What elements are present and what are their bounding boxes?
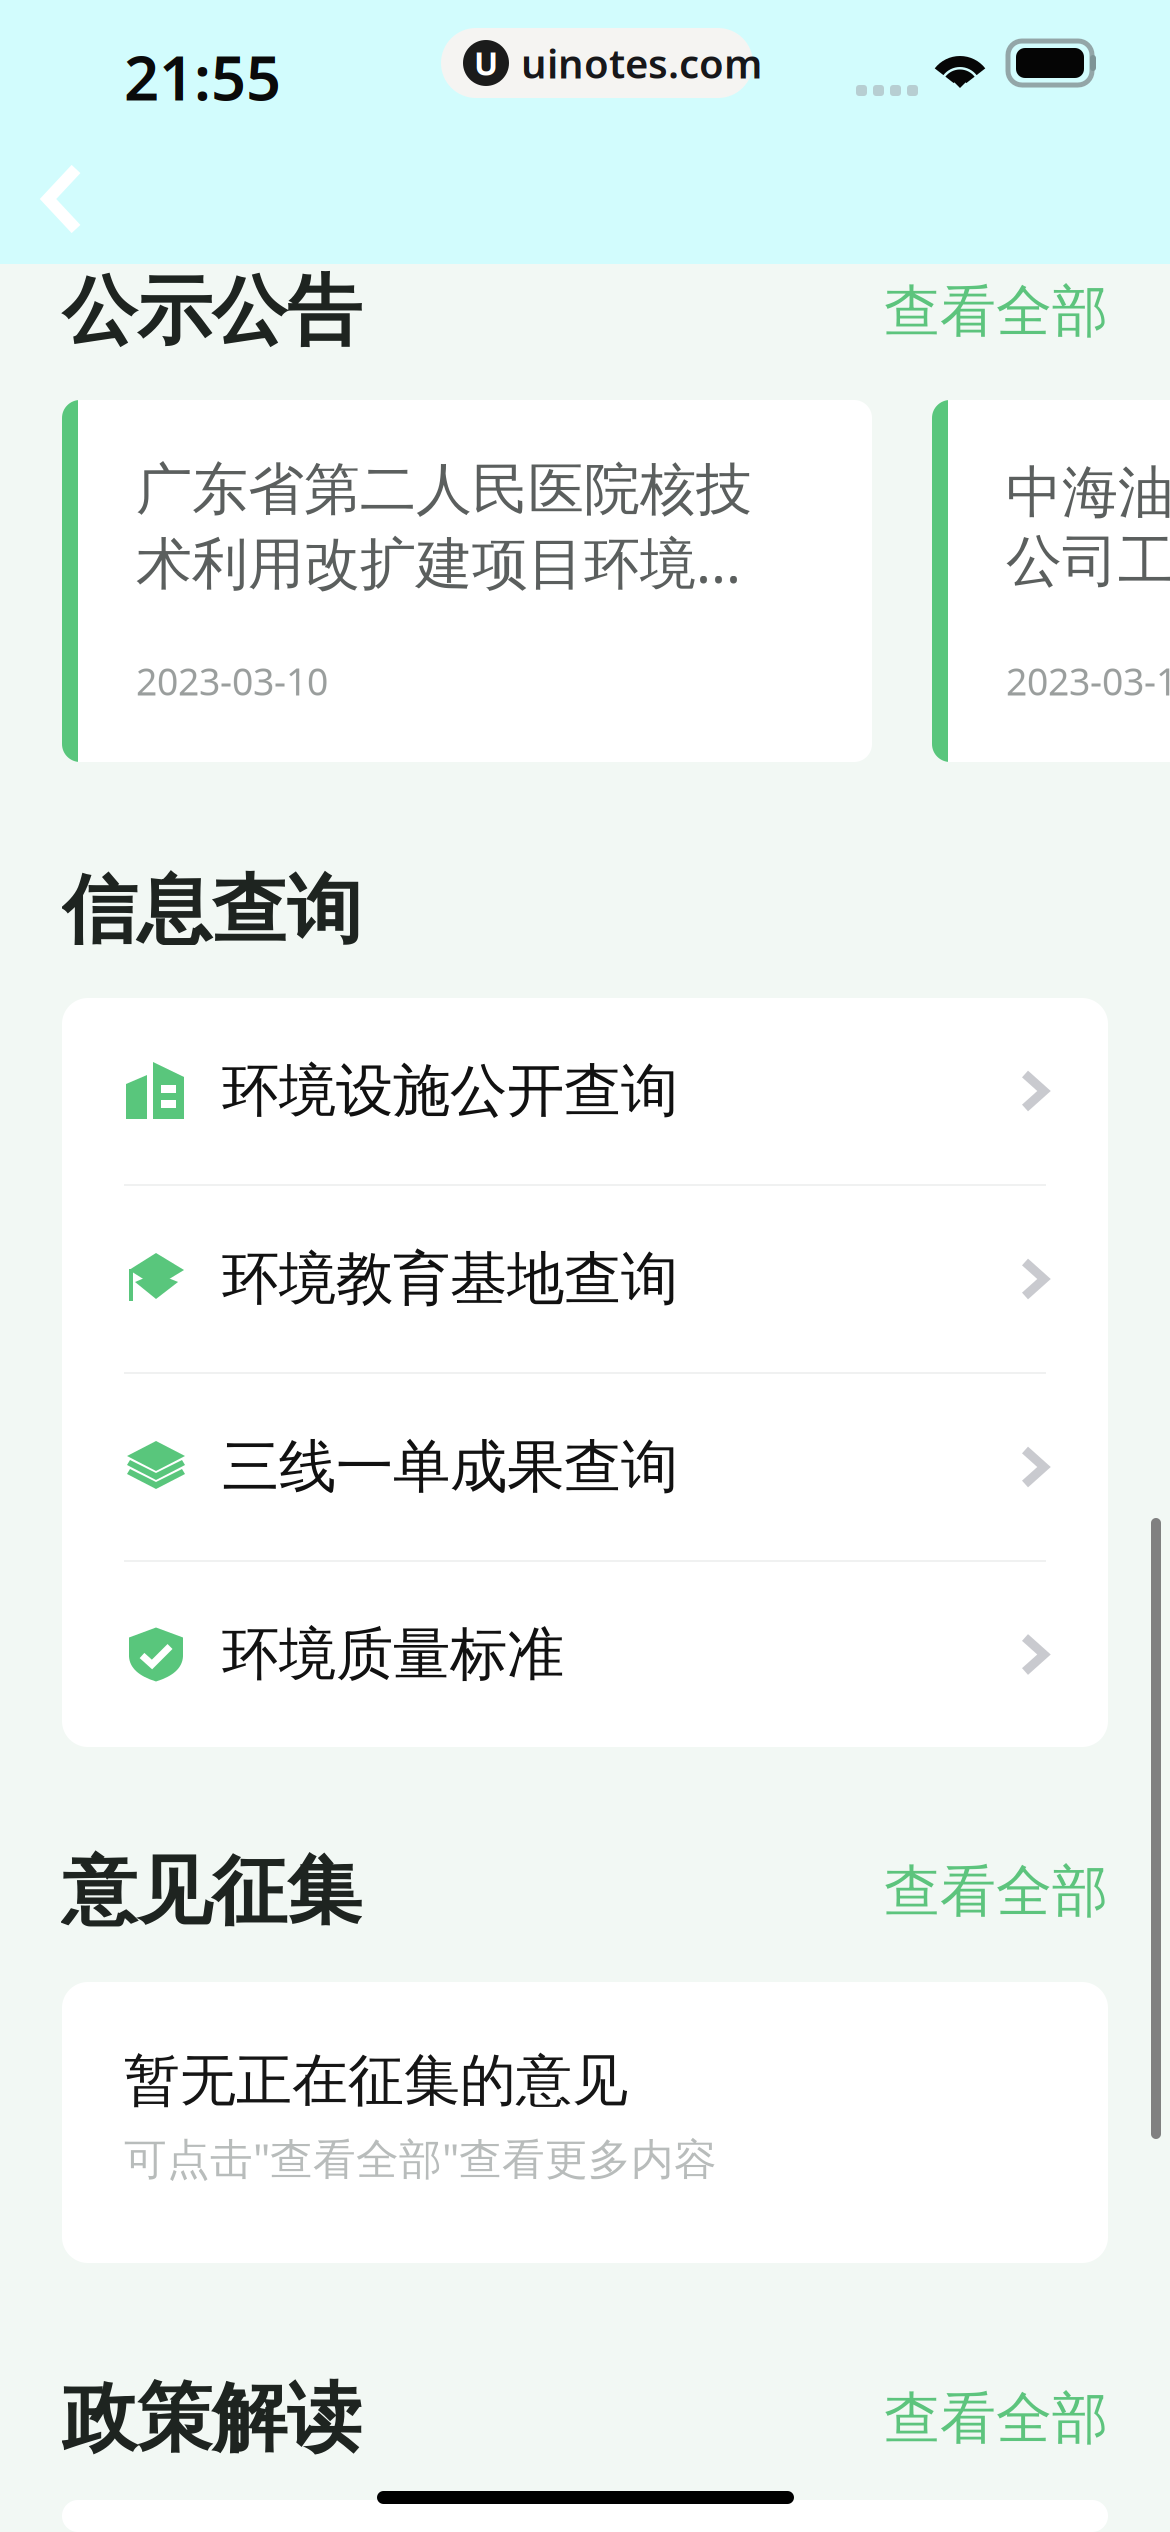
button[interactable]: 三线一单成果查询 (62, 1374, 1108, 1560)
button[interactable]: 中海油能源发展股份有限公司工程技术分公司 (932, 400, 1170, 762)
staticText: uinotes.com (521, 36, 762, 89)
staticText: 2023-03-10 (136, 656, 328, 706)
button[interactable]: 查看全部 (884, 2384, 1108, 2453)
staticText: 2023-03-10 (1006, 656, 1170, 706)
staticText: 21:55 (124, 36, 281, 117)
button[interactable]: 查看全部 (884, 1857, 1108, 1926)
staticText: U (474, 42, 498, 84)
staticText: 广东省第二人民医院核技术利用改扩建项目环境影响报告表 (136, 455, 776, 599)
staticText: 查看全部 (884, 1857, 1108, 1926)
button[interactable]: 环境设施公开查询 (62, 998, 1108, 1184)
staticText: 中海油能源发展股份有限公司工程技术分公司 (1006, 458, 1170, 596)
button[interactable]: 查看全部 (884, 277, 1108, 346)
button[interactable]: 环境质量标准 (62, 1562, 1108, 1747)
staticText: 环境质量标准 (222, 1619, 564, 1690)
button[interactable]: Back (38, 160, 134, 238)
button[interactable]: 广东省第二人民医院核技术利用改扩建项目环境影响报告表 (62, 400, 872, 762)
staticText: 环境设施公开查询 (222, 1056, 678, 1126)
staticText: 信息查询 (62, 865, 362, 956)
staticText: 查看全部 (884, 2384, 1108, 2453)
staticText: 暂无正在征集的意见 (124, 2046, 628, 2115)
staticText: 三线一单成果查询 (222, 1432, 678, 1502)
staticText: 政策解读 (62, 2373, 362, 2464)
staticText: 意见征集 (62, 1846, 362, 1937)
staticText: 公示公告 (62, 266, 362, 357)
button[interactable]: 暂无正在征集的意见 (62, 1982, 1108, 2263)
button[interactable]: 环境教育基地查询 (62, 1186, 1108, 1372)
staticText: 可点击"查看全部"查看更多内容 (124, 2130, 717, 2186)
staticText: 查看全部 (884, 277, 1108, 346)
staticText: 环境教育基地查询 (222, 1244, 678, 1314)
